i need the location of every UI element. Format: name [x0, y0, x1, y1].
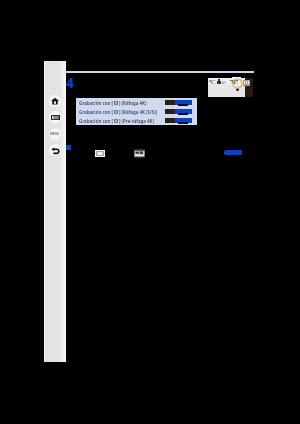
staticText: 4 — [66, 74, 74, 92]
button[interactable]: Display — [49, 111, 61, 123]
button[interactable]: Grabación con [ — [76, 100, 197, 106]
staticText: Grabación con [ — [79, 100, 113, 106]
button[interactable]: Menu — [49, 128, 61, 140]
staticText: 4:1 — [222, 81, 226, 85]
staticText: ] (Ráfaga 4K (S/S)) — [119, 109, 158, 115]
staticText: MENU — [50, 132, 60, 136]
staticText: ] (Pre-ráfaga 4K) — [119, 118, 155, 124]
button[interactable]: Grabación con [ — [76, 109, 197, 115]
button[interactable]: Grabación con [ — [76, 118, 197, 124]
button[interactable]: Playback — [134, 149, 145, 158]
staticText: Grabación con [ — [79, 118, 113, 124]
staticText: ] (Ráfaga 4K) — [119, 100, 147, 106]
button[interactable]: Home — [49, 95, 61, 107]
staticText: Grabación con [ — [79, 109, 113, 115]
button[interactable]: 4K photo mode — [95, 150, 105, 157]
button[interactable]: Back — [49, 144, 61, 156]
